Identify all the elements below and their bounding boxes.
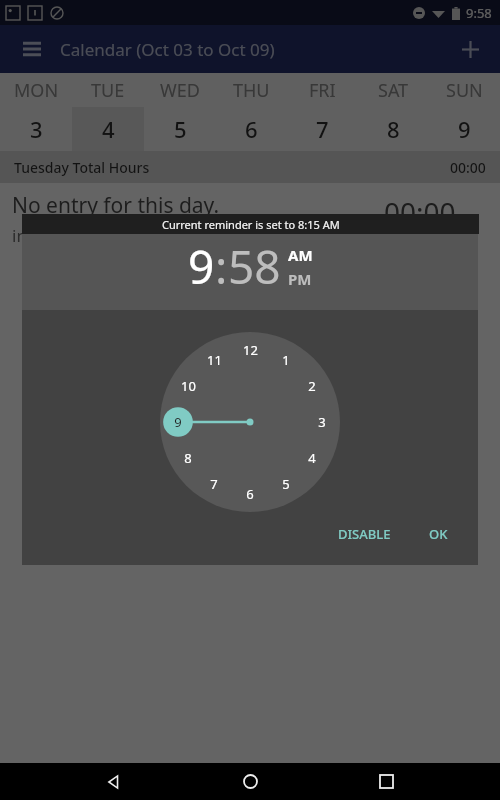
- staticText: 3: [30, 114, 43, 144]
- button[interactable]: 6: [237, 481, 263, 507]
- button[interactable]: 10: [175, 373, 201, 399]
- staticText: 6: [246, 485, 254, 503]
- staticText: MON: [14, 78, 59, 103]
- button[interactable]: 5: [273, 471, 299, 497]
- button[interactable]: DISABLE: [328, 517, 401, 551]
- button[interactable]: PM: [288, 269, 312, 289]
- staticText: 9: [174, 413, 182, 431]
- staticText: 12: [243, 341, 258, 359]
- staticText: 9: [458, 114, 471, 144]
- staticText: 4: [102, 114, 115, 144]
- button[interactable]: 8: [175, 445, 201, 471]
- staticText: 00:00: [384, 193, 456, 231]
- button[interactable]: OK: [419, 517, 458, 551]
- staticText: 6: [245, 114, 258, 144]
- staticText: :: [215, 235, 228, 298]
- button[interactable]: 11: [201, 347, 227, 373]
- button[interactable]: 3: [309, 409, 335, 435]
- button[interactable]: SAT: [358, 73, 429, 151]
- staticText: 00:00: [450, 158, 486, 177]
- staticText: OK: [429, 525, 448, 543]
- staticText: 9:58: [466, 4, 492, 22]
- button[interactable]: 4: [299, 445, 325, 471]
- button[interactable]: Add entry: [450, 29, 490, 69]
- staticText: 8: [387, 114, 400, 144]
- button[interactable]: Back: [92, 763, 136, 800]
- button[interactable]: 9: [165, 409, 191, 435]
- staticText: 4: [308, 449, 316, 467]
- button[interactable]: 1: [273, 347, 299, 373]
- staticText: No entry for this day.: [12, 191, 220, 220]
- button[interactable]: Home: [228, 763, 272, 800]
- button[interactable]: 7: [201, 471, 227, 497]
- button[interactable]: AM: [288, 245, 313, 265]
- staticText: in: [12, 224, 27, 247]
- staticText: THU: [233, 78, 270, 103]
- staticText: TUE: [91, 78, 125, 103]
- staticText: 7: [210, 475, 218, 493]
- button[interactable]: Recent apps: [364, 763, 408, 800]
- button[interactable]: No entry for this day.: [0, 183, 500, 263]
- staticText: 3: [318, 413, 326, 431]
- staticText: 11: [207, 351, 222, 369]
- button[interactable]: Open navigation menu: [12, 29, 52, 69]
- staticText: FRI: [309, 78, 336, 103]
- staticText: WED: [160, 78, 200, 103]
- staticText: SAT: [378, 78, 409, 103]
- staticText: 7: [316, 114, 329, 144]
- staticText: 8: [184, 449, 192, 467]
- staticText: 10: [181, 377, 196, 395]
- staticText: 1: [282, 351, 290, 369]
- button[interactable]: SUN: [429, 73, 500, 151]
- staticText: Current reminder is set to 8:15 AM: [162, 217, 340, 232]
- button[interactable]: FRI: [287, 73, 358, 151]
- staticText: Calendar (Oct 03 to Oct 09): [60, 38, 275, 61]
- staticText: SUN: [446, 78, 483, 103]
- button[interactable]: 58: [228, 235, 281, 298]
- button[interactable]: 2: [299, 373, 325, 399]
- button[interactable]: THU: [216, 73, 287, 151]
- button[interactable]: 9: [188, 235, 215, 298]
- staticText: 2: [308, 377, 316, 395]
- staticText: DISABLE: [338, 525, 391, 543]
- button[interactable]: 12: [237, 337, 263, 363]
- staticText: Tuesday Total Hours: [14, 158, 150, 177]
- staticText: 5: [282, 475, 290, 493]
- button[interactable]: MON: [0, 73, 72, 151]
- button[interactable]: TUE: [72, 73, 144, 151]
- button[interactable]: WED: [144, 73, 216, 151]
- staticText: 5: [174, 114, 187, 144]
